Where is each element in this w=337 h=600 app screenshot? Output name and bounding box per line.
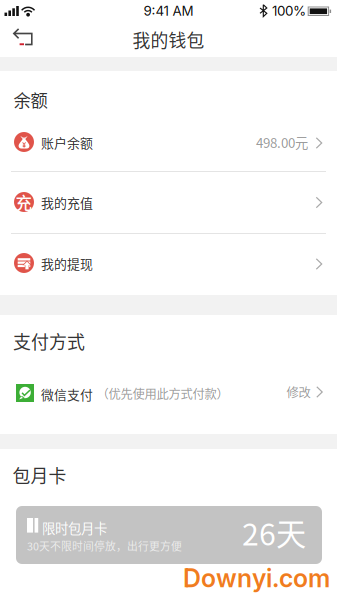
staticText: 498.00元	[256, 132, 308, 152]
staticText: 我的提现	[41, 254, 93, 273]
button[interactable]: Back	[0, 22, 46, 57]
staticText: 包月卡	[12, 462, 66, 488]
staticText: 30天不限时间停放，出行更方便	[27, 538, 182, 554]
staticText: 26天	[242, 510, 306, 554]
staticText: 100%	[272, 3, 306, 19]
staticText: （优先使用此方式付款）	[96, 384, 228, 402]
staticText: 充	[15, 190, 32, 214]
staticText: 9:41 AM	[143, 3, 193, 19]
staticText: 修改	[286, 383, 310, 401]
button[interactable]: 账户余额	[0, 113, 337, 171]
staticText: 账户余额	[41, 133, 93, 152]
staticText: 微信支付	[41, 385, 93, 403]
button[interactable]: 微信支付	[0, 373, 337, 413]
staticText: 支付方式	[13, 328, 85, 354]
staticText: 余额	[13, 87, 47, 112]
staticText: 限时包月卡	[42, 518, 107, 537]
staticText: Downyi.com	[183, 563, 330, 593]
button[interactable]: 充	[0, 172, 337, 233]
button[interactable]: 我的提现	[0, 234, 337, 295]
button[interactable]: 限时包月卡	[16, 506, 322, 564]
staticText: 我的充值	[41, 193, 93, 212]
staticText: 我的钱包	[132, 27, 204, 52]
